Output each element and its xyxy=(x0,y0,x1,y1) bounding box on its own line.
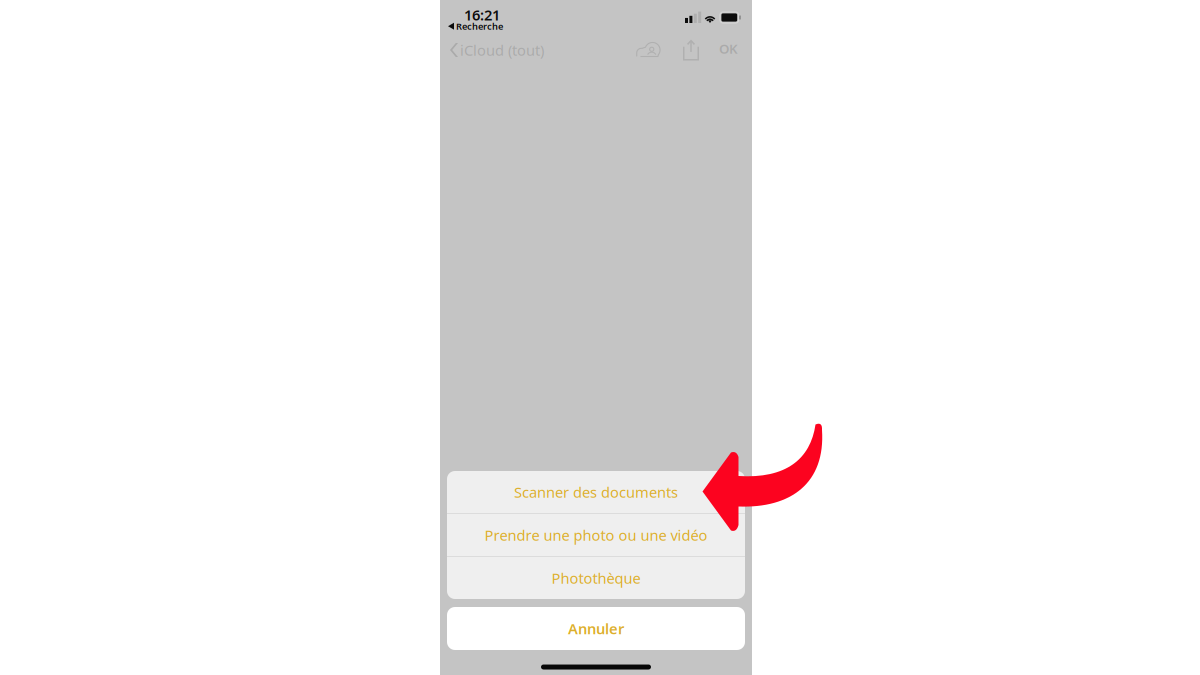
staticText: 16:21 xyxy=(464,5,500,24)
staticText: iCloud (tout) xyxy=(460,40,544,60)
button[interactable]: Partager xyxy=(676,35,706,64)
button[interactable]: Photothèque xyxy=(447,557,745,599)
button[interactable]: Scanner des documents xyxy=(447,471,745,513)
button[interactable]: Annuler xyxy=(447,607,745,650)
button[interactable]: Prendre une photo ou une vidéo xyxy=(447,514,745,556)
staticText: Prendre une photo ou une vidéo xyxy=(484,525,707,545)
staticText: Photothèque xyxy=(551,568,640,588)
button[interactable]: iCloud (tout) xyxy=(440,34,544,66)
button[interactable]: Ajouter des personnes xyxy=(628,34,676,66)
button[interactable]: Recherche xyxy=(448,20,503,32)
button[interactable]: OK xyxy=(706,35,744,65)
staticText: Annuler xyxy=(568,619,624,638)
staticText: Scanner des documents xyxy=(514,482,678,502)
staticText: OK xyxy=(719,40,738,57)
staticText: Recherche xyxy=(456,20,503,32)
